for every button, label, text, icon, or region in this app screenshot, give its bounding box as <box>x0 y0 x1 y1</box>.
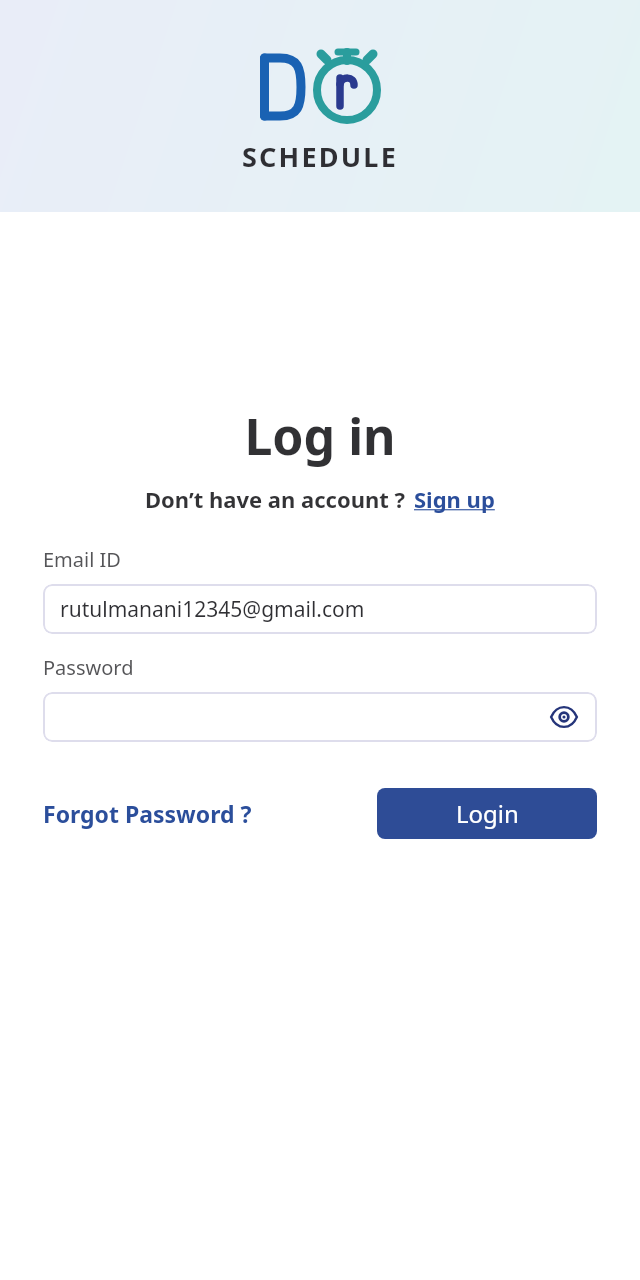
button[interactable]: Show password <box>549 702 579 732</box>
staticText: Password <box>43 654 134 681</box>
button[interactable]: Sign up <box>414 484 495 514</box>
button[interactable]: Show password <box>43 692 597 742</box>
button[interactable]: Login <box>377 788 597 839</box>
staticText: Don’t have an account ? <box>145 484 406 514</box>
staticText: Login <box>456 797 519 830</box>
staticText: Forgot Password ? <box>43 798 252 829</box>
staticText: Log in <box>0 402 640 470</box>
staticText: Email ID <box>43 546 121 573</box>
staticText: Sign up <box>414 484 495 514</box>
button[interactable]: Forgot Password ? <box>43 798 252 829</box>
staticText: rutulmanani12345@gmail.com <box>60 595 365 624</box>
staticText: SCHEDULE <box>242 138 398 175</box>
button[interactable]: rutulmanani12345@gmail.com <box>43 584 597 634</box>
